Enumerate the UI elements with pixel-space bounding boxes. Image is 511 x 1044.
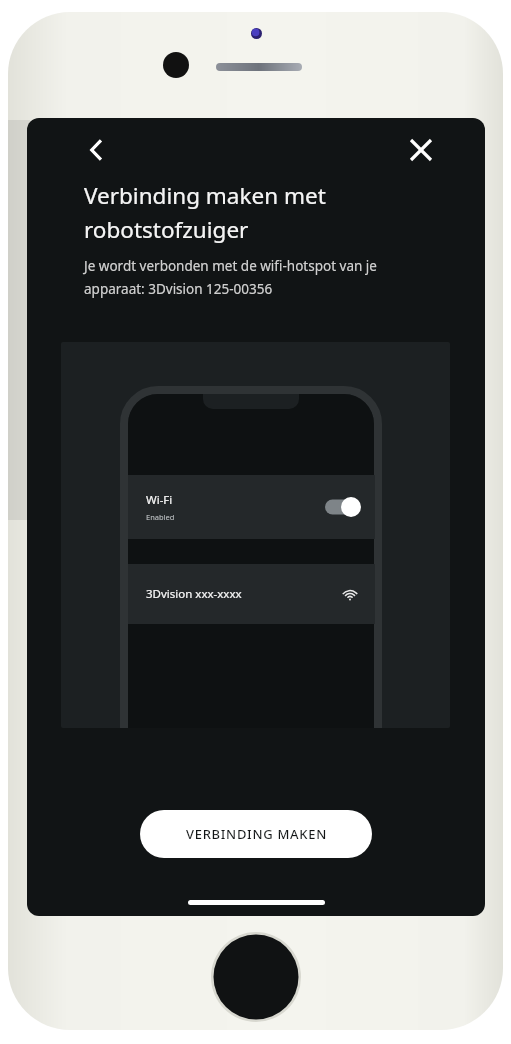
staticText: Je wordt verbonden met de wifi-hotspot v… [84,257,439,298]
button[interactable]: Wi-Fi toggle [325,497,361,517]
staticText: Wi-Fi [146,492,173,508]
staticText: VERBINDING MAKEN [186,825,327,843]
staticText: Enabled [146,512,175,522]
staticText: 3Dvision xxx-xxxx [146,586,242,602]
button[interactable]: 3Dvision xxx-xxxx [128,564,375,624]
staticText: Verbinding maken met robotstofzuiger [84,180,326,244]
button[interactable]: Wi-Fi [128,475,375,539]
button[interactable]: Close [399,128,443,172]
button[interactable]: Back [75,128,119,172]
button[interactable]: VERBINDING MAKEN [140,810,372,858]
